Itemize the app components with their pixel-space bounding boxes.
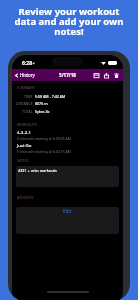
staticText: 8076 m xyxy=(35,101,48,106)
staticText: 5:58 AM - 7:42 AM xyxy=(35,94,66,99)
staticText: WORKOUTS xyxy=(17,122,37,127)
button[interactable]: Share xyxy=(104,73,109,78)
staticText: 4321 + misc workouts xyxy=(18,168,57,173)
button[interactable]: Edit xyxy=(63,208,72,214)
staticText: TOTAL xyxy=(22,109,33,114)
staticText: 4-3-2-1 xyxy=(17,129,31,135)
button[interactable]: Calendar xyxy=(94,73,99,78)
button[interactable]: 4321 + misc workouts xyxy=(16,166,119,187)
staticText: Review your workout data and add your ow… xyxy=(0,5,138,38)
staticText: Just Go xyxy=(17,142,32,148)
button[interactable]: DISTANCE xyxy=(12,100,123,106)
staticText: 6:28 xyxy=(22,60,32,67)
staticText: DISTANCE xyxy=(16,101,33,106)
button[interactable]: TOTAL xyxy=(12,108,123,114)
staticText: 5/17/18 xyxy=(59,72,76,78)
staticText: 4 intervals starting at 6:29:05 AM xyxy=(17,136,71,141)
staticText: ATHLETES xyxy=(17,195,34,200)
staticText: SUMMARY xyxy=(17,85,35,90)
staticText: 5 intervals starting at 6:42:15 AM xyxy=(17,149,71,154)
staticText: NOTES xyxy=(17,158,29,163)
staticText: History xyxy=(20,72,35,78)
button[interactable]: Delete xyxy=(114,73,119,78)
button[interactable]: TIME xyxy=(12,93,123,99)
button[interactable]: History xyxy=(14,72,35,78)
staticText: TIME xyxy=(24,94,33,99)
button[interactable]: 4-3-2-1 xyxy=(17,129,123,140)
button[interactable]: Just Go xyxy=(17,142,123,153)
staticText: Sykes 3x xyxy=(35,109,50,114)
